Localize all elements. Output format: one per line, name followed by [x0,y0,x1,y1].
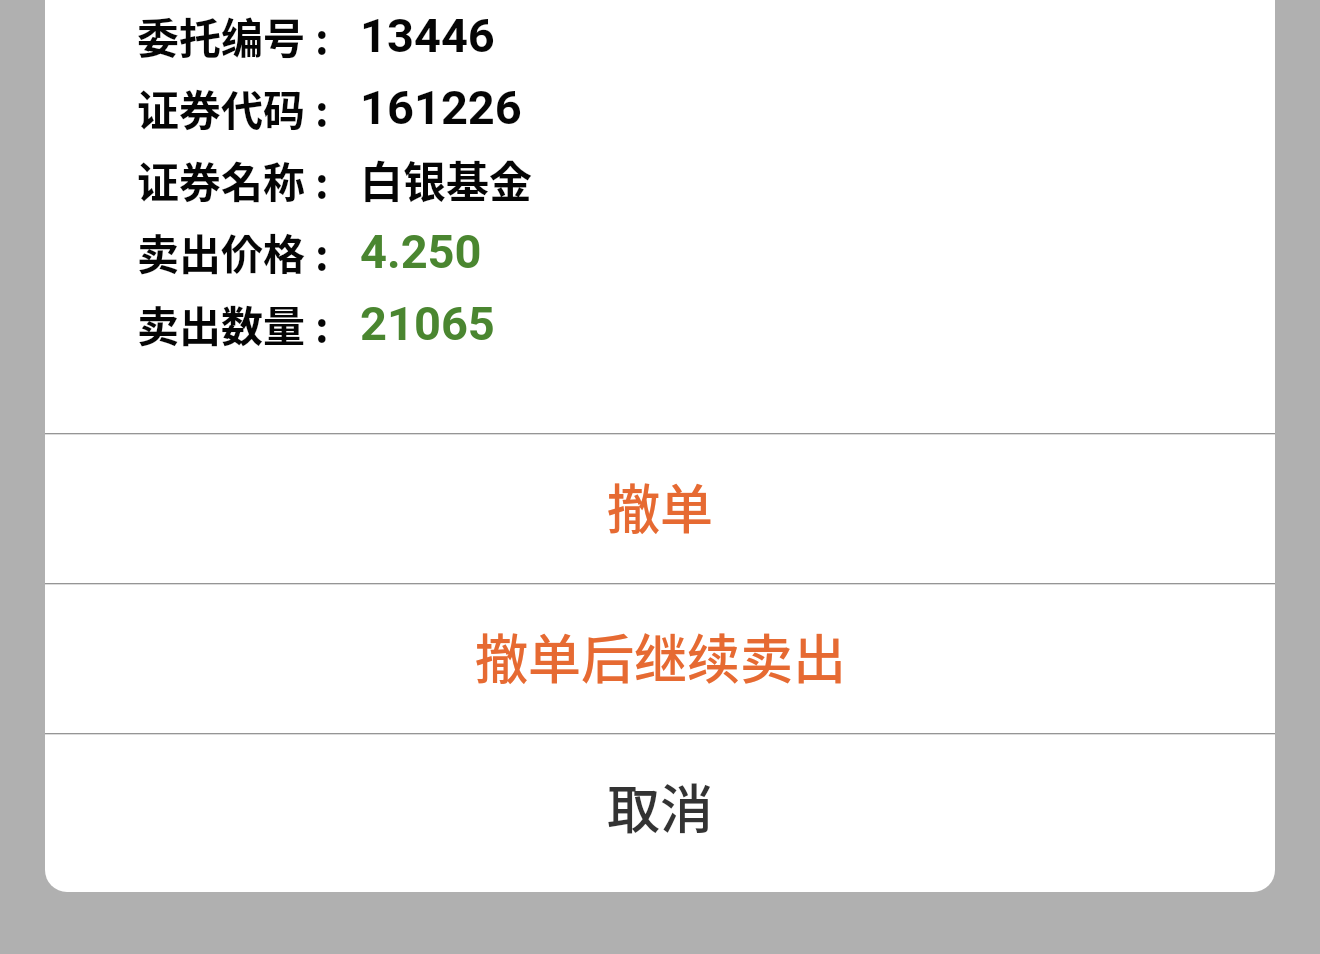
staticText: 撤单 [607,468,713,545]
staticText: : [315,5,329,66]
staticText: 委托编号 [137,5,306,66]
staticText: 撤单后继续卖出 [475,618,846,695]
button[interactable]: 取消 [45,733,1275,883]
staticText: : [315,293,329,354]
staticText: 卖出数量 [137,293,306,354]
staticText: 21065 [360,296,495,351]
button[interactable]: 撤单后继续卖出 [45,583,1275,733]
staticText: 取消 [607,768,713,845]
staticText: 4.250 [360,224,482,279]
staticText: 证券名称 [137,149,306,210]
staticText: : [315,149,329,210]
staticText: 161226 [360,80,522,135]
staticText: 13446 [360,8,495,63]
staticText: : [315,77,329,138]
staticText: : [315,221,329,282]
staticText: 证券代码 [137,77,306,138]
staticText: 卖出价格 [137,221,306,282]
button[interactable]: 撤单 [45,433,1275,583]
staticText: 白银基金 [360,148,532,210]
